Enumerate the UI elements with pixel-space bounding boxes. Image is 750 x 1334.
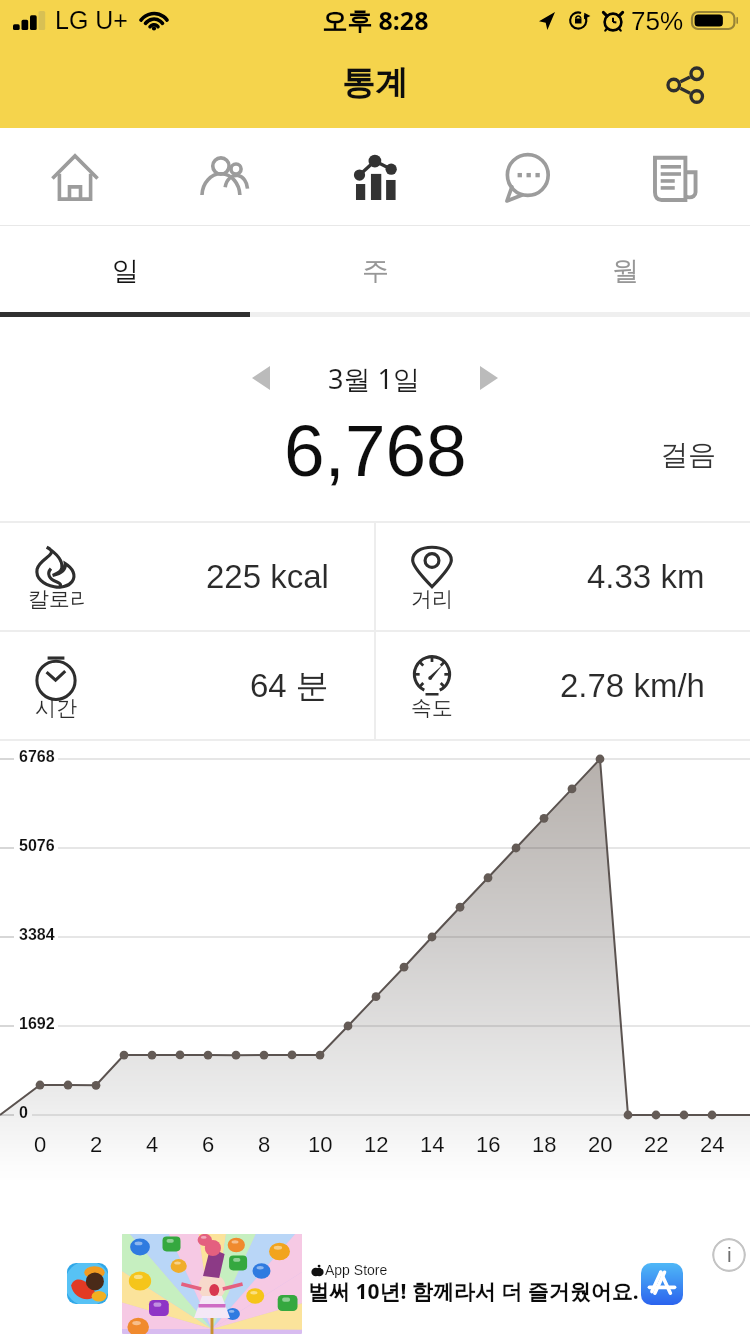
- staticText: 10: [308, 1132, 333, 1157]
- staticText: 0: [19, 1104, 28, 1122]
- staticText: 6: [202, 1132, 215, 1157]
- button[interactable]: Ad information: [712, 1238, 746, 1272]
- staticText: 오후 8:28: [322, 3, 429, 37]
- staticText: 75%: [631, 6, 684, 35]
- staticText: 1692: [19, 1015, 55, 1033]
- staticText: 14: [420, 1132, 445, 1157]
- staticText: 시간: [35, 695, 77, 721]
- staticText: 속도: [411, 695, 453, 721]
- button[interactable]: Friends: [150, 128, 300, 226]
- button[interactable]: Next day: [458, 347, 520, 409]
- button[interactable]: Candy Crush app icon: [67, 1263, 108, 1304]
- button[interactable]: Share: [655, 55, 715, 115]
- staticText: 24: [700, 1132, 725, 1157]
- staticText: 통계: [342, 62, 408, 104]
- staticText: 6768: [19, 748, 55, 766]
- staticText: 월: [612, 254, 639, 288]
- staticText: 벌써 10년! 함께라서 더 즐거웠어요.: [308, 1277, 639, 1306]
- button[interactable]: Ad artwork: [122, 1234, 302, 1334]
- button[interactable]: Statistics: [300, 128, 450, 226]
- staticText: 걸음: [660, 437, 716, 472]
- button[interactable]: 일: [0, 228, 250, 317]
- staticText: LG U+: [55, 6, 128, 34]
- staticText: 일: [112, 254, 139, 288]
- staticText: 4.33 km: [587, 558, 705, 595]
- staticText: 0: [34, 1132, 47, 1157]
- staticText: 22: [644, 1132, 669, 1157]
- button[interactable]: Open App Store: [641, 1263, 683, 1305]
- staticText: i: [727, 1243, 732, 1266]
- button[interactable]: News: [600, 128, 750, 226]
- button[interactable]: 시간: [0, 632, 374, 739]
- staticText: 칼로리: [28, 586, 84, 612]
- staticText: 4: [146, 1132, 159, 1157]
- staticText: App Store: [325, 1262, 388, 1278]
- button[interactable]: 속도: [376, 632, 750, 739]
- staticText: 225 kcal: [206, 558, 329, 595]
- button[interactable]: 칼로리: [0, 523, 374, 630]
- button[interactable]: Chat: [450, 128, 600, 226]
- staticText: 8: [258, 1132, 271, 1157]
- staticText: 16: [476, 1132, 501, 1157]
- staticText: 6,768: [284, 410, 467, 492]
- staticText: 12: [364, 1132, 389, 1157]
- staticText: 2.78 km/h: [560, 667, 705, 704]
- button[interactable]: Home: [0, 128, 150, 226]
- staticText: 3384: [19, 926, 55, 944]
- staticText: 2: [90, 1132, 103, 1157]
- button[interactable]: 거리: [376, 523, 750, 630]
- staticText: 20: [588, 1132, 613, 1157]
- staticText: 주: [362, 254, 389, 288]
- button[interactable]: 벌써 10년! 함께라서 더 즐거웠어요.: [308, 1277, 639, 1306]
- staticText: 3월 1일: [328, 360, 420, 397]
- button[interactable]: Previous day: [230, 347, 292, 409]
- staticText: 5076: [19, 837, 55, 855]
- button[interactable]: 주: [250, 228, 500, 317]
- button[interactable]: 월: [500, 228, 750, 317]
- staticText: 64 분: [250, 665, 329, 707]
- staticText: 18: [532, 1132, 557, 1157]
- staticText: 거리: [411, 586, 453, 612]
